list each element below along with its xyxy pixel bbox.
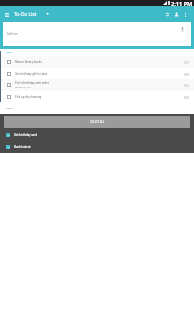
button[interactable]: Reorder item xyxy=(184,59,189,65)
staticText: TODO xyxy=(6,51,13,54)
button[interactable]: Voice input xyxy=(180,26,184,32)
button[interactable]: Get birthday card xyxy=(0,129,194,141)
button[interactable]: Account xyxy=(172,10,181,19)
staticText: Pick up dry cleaning xyxy=(15,95,42,99)
button[interactable]: Pick up dry cleaning xyxy=(0,91,194,102)
button[interactable]: Put in birthday cake order xyxy=(0,79,194,91)
staticText: Return library books xyxy=(15,60,42,64)
staticText: 2:11 PM xyxy=(171,0,193,6)
staticText: October 30, 2017 xyxy=(15,86,32,89)
button[interactable]: Return library books xyxy=(0,56,194,68)
button[interactable]: More options xyxy=(181,10,190,19)
button[interactable]: Choose list xyxy=(43,10,51,18)
staticText: Put in birthday cake order xyxy=(15,81,50,85)
staticText: To-Do List xyxy=(14,11,37,18)
staticText: Get birthday gift for Jane xyxy=(15,72,48,76)
button[interactable]: Refresh xyxy=(163,10,172,19)
button[interactable]: Reorder item xyxy=(184,94,189,100)
button[interactable]: Reorder item xyxy=(184,71,189,77)
staticText: DONE xyxy=(6,107,13,110)
button[interactable]: Book haircut xyxy=(0,141,194,153)
staticText: Add item xyxy=(7,32,19,36)
button[interactable]: Open navigation menu xyxy=(2,10,11,19)
button[interactable]: Get birthday gift for Jane xyxy=(0,68,194,79)
button[interactable]: Reorder item xyxy=(184,82,189,88)
staticText: DELETE ALL xyxy=(90,120,105,124)
staticText: Book haircut xyxy=(14,145,31,149)
button[interactable]: Add item xyxy=(3,22,191,46)
staticText: Get birthday card xyxy=(14,133,37,137)
button[interactable]: DELETE ALL xyxy=(4,116,190,128)
